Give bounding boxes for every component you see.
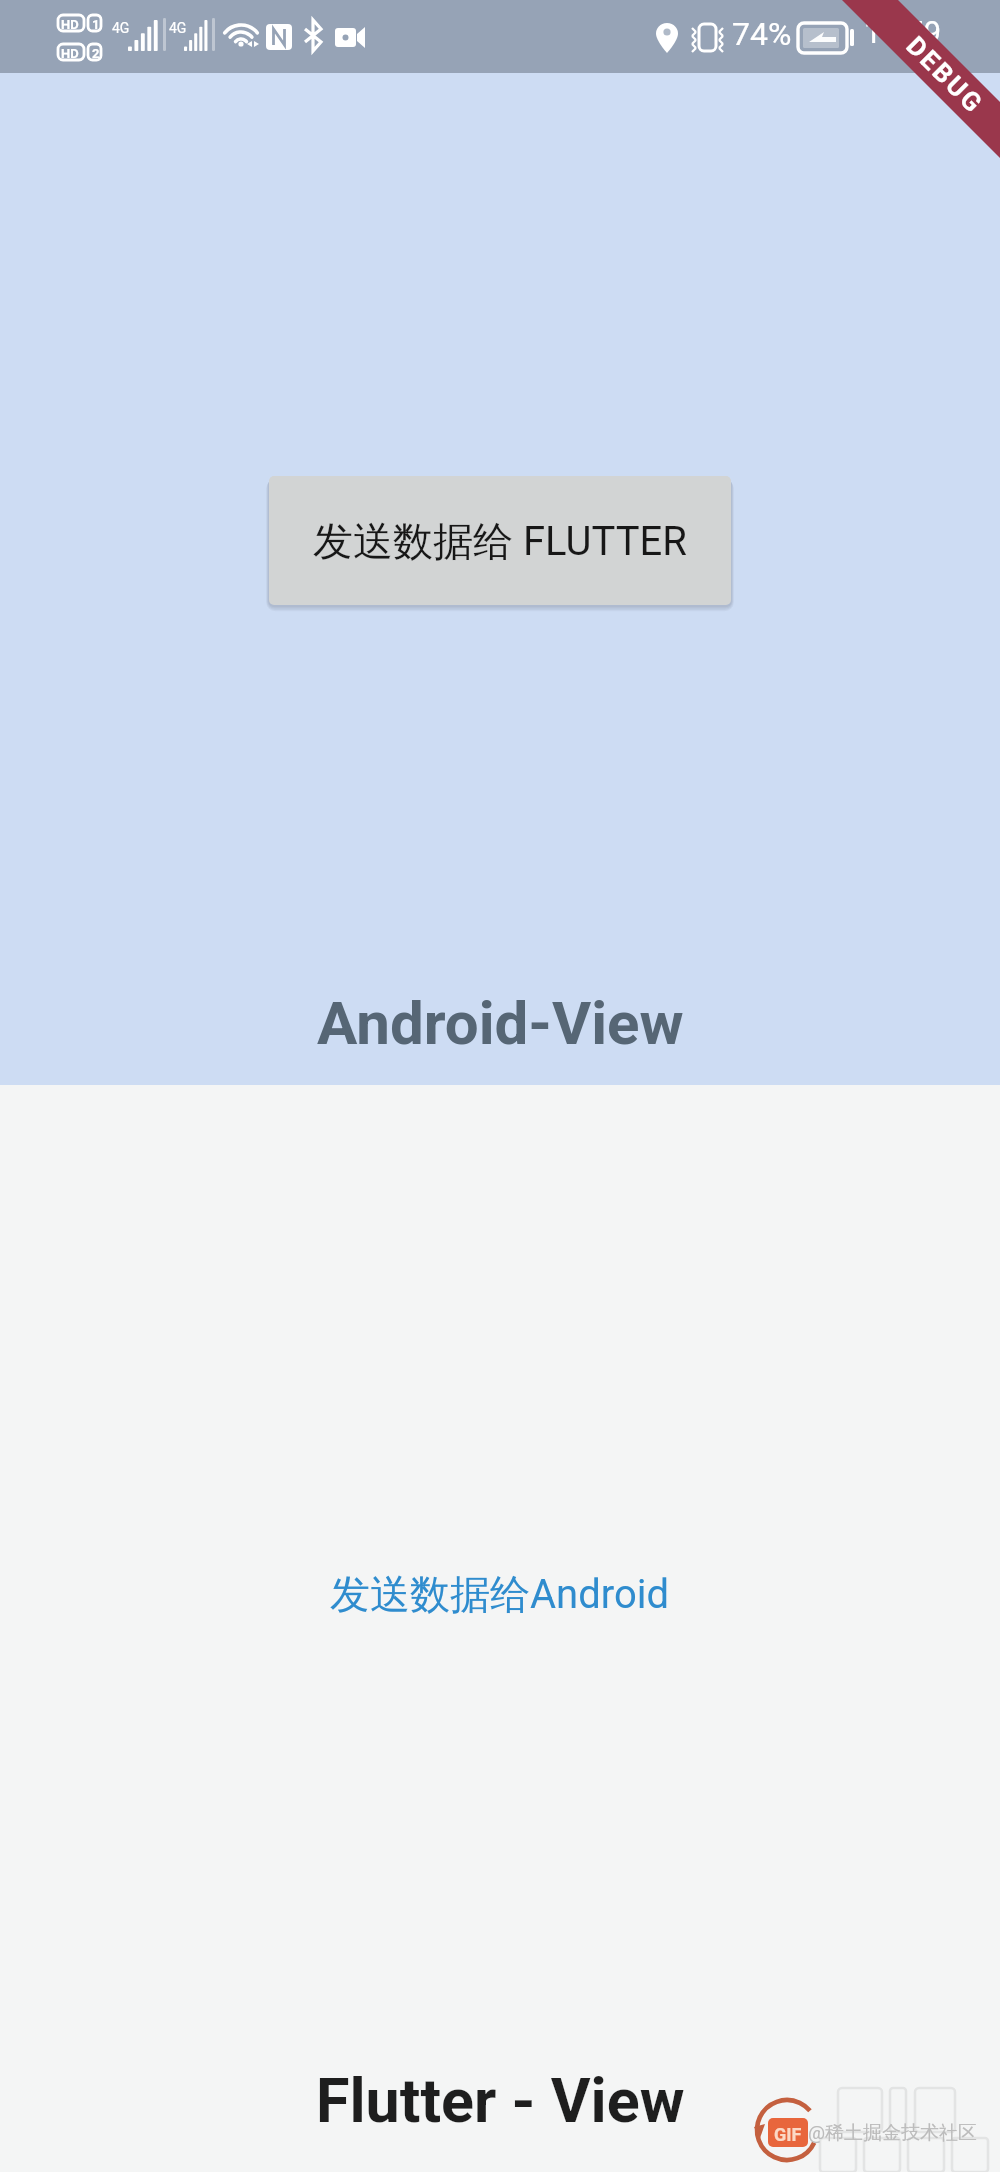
staticText: HD xyxy=(61,17,79,32)
staticText: HD xyxy=(61,46,79,61)
staticText: 4G xyxy=(169,20,187,36)
staticText: 发送数据给Android xyxy=(330,1569,670,1619)
button[interactable]: 发送数据给Android xyxy=(330,1569,670,1619)
staticText: DEBUG xyxy=(900,30,990,120)
other: Status bar xyxy=(0,0,1000,73)
staticText: 1 xyxy=(92,17,100,32)
staticText: GIF xyxy=(774,2124,802,2145)
staticText: 4G xyxy=(112,20,130,36)
staticText: 2 xyxy=(92,46,100,61)
staticText: Android-View xyxy=(317,988,684,1058)
staticText: 14:59 xyxy=(864,14,942,50)
button[interactable]: 发送数据给 FLUTTER xyxy=(269,476,731,605)
staticText: 发送数据给 FLUTTER xyxy=(313,516,687,566)
staticText: @稀土掘金技术社区 xyxy=(808,2121,978,2145)
staticText: Flutter - View xyxy=(316,2065,685,2136)
staticText: 74% xyxy=(732,15,792,53)
